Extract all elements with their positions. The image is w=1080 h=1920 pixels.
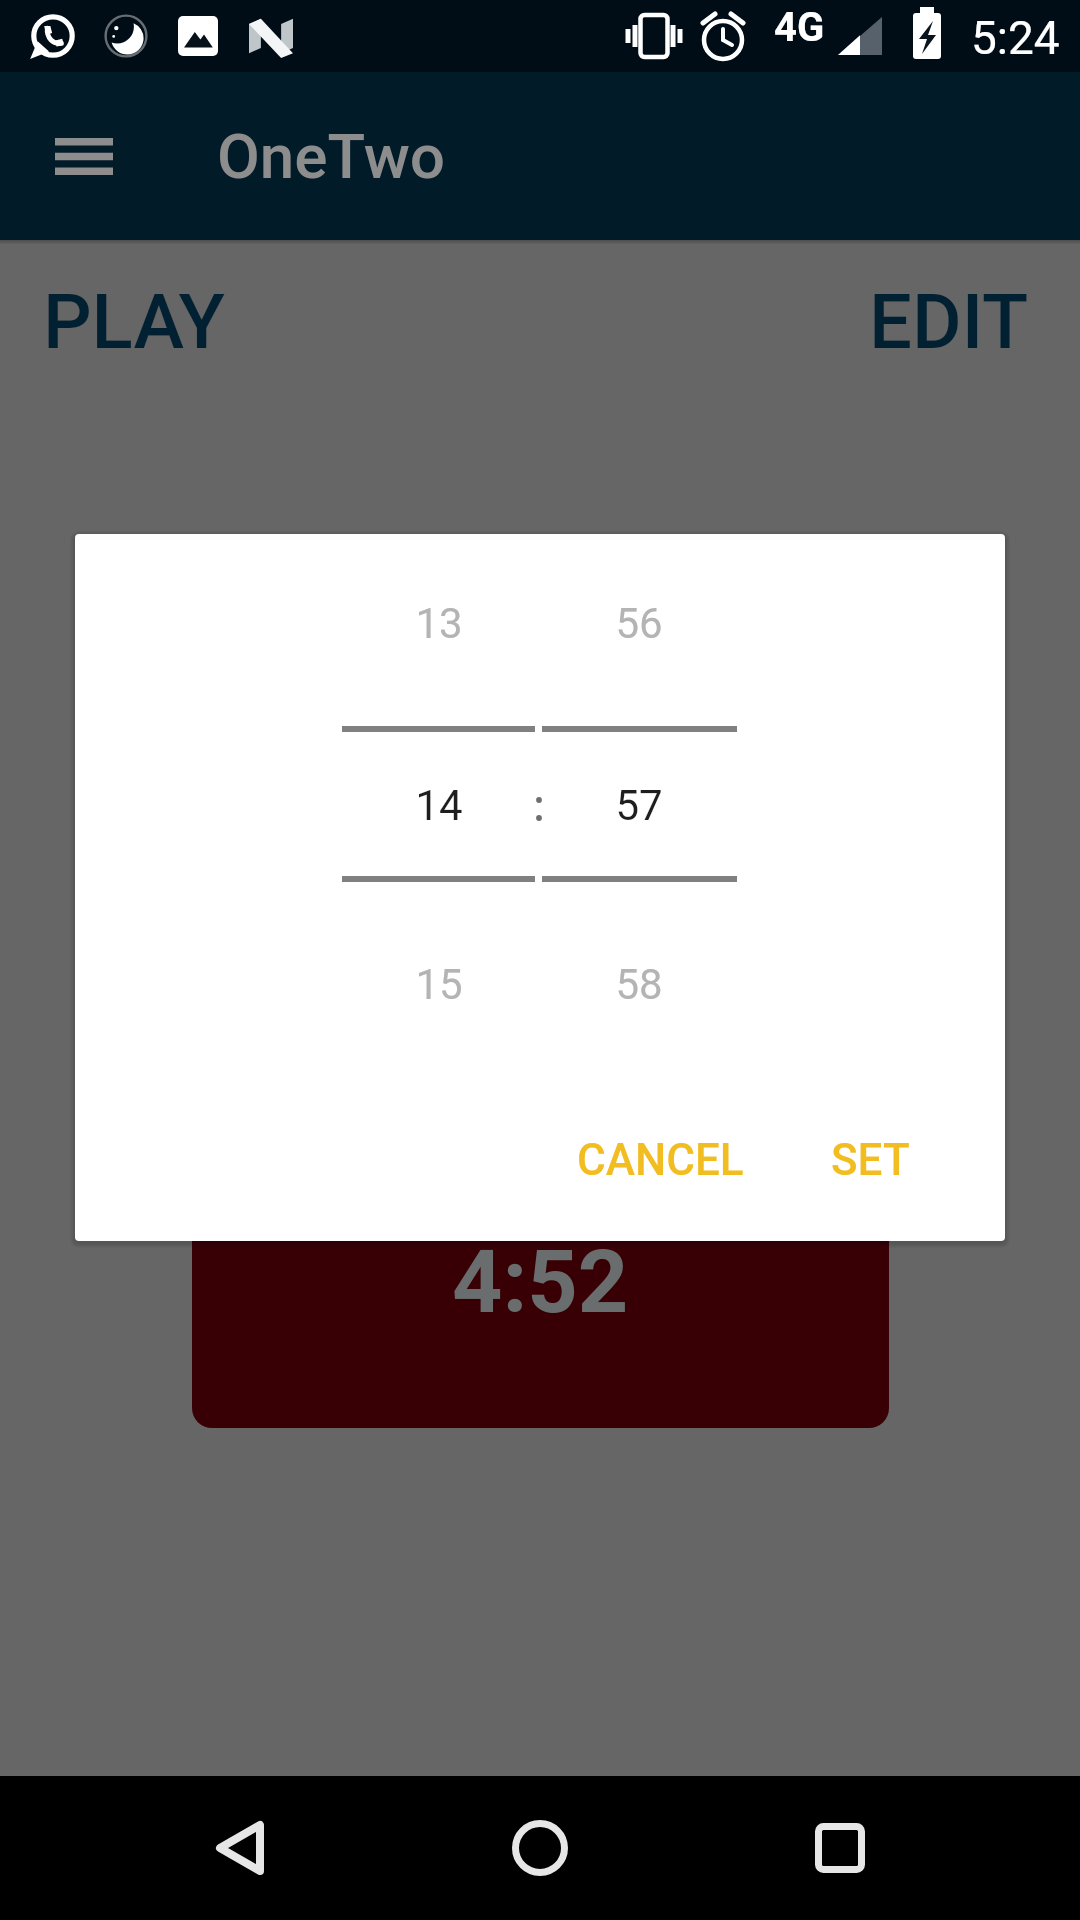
button[interactable]: Back [180,1800,300,1896]
staticText: SET [831,1134,910,1186]
button[interactable]: 13 [344,563,534,683]
button[interactable]: Recent apps [780,1800,900,1896]
staticText: 58 [615,960,663,1009]
button[interactable]: 15 [344,924,534,1044]
staticText: PLAY [43,277,225,366]
button[interactable]: PLAY [28,271,240,371]
button[interactable]: 4:52 [192,1216,889,1428]
staticText: 4G [774,4,825,51]
staticText: EDIT [869,277,1029,366]
staticText: CANCEL [577,1134,744,1186]
button[interactable]: Home [480,1800,600,1896]
button[interactable]: 58 [544,924,734,1044]
button[interactable]: SET [810,1112,930,1208]
staticText: 4:52 [452,1230,629,1333]
button[interactable]: EDIT [848,271,1050,371]
staticText: 14 [415,781,463,830]
button[interactable]: Open navigation menu [32,107,136,205]
staticText: 57 [615,781,663,830]
staticText: 13 [415,599,463,648]
staticText: OneTwo [217,120,446,193]
button[interactable]: CANCEL [561,1112,759,1208]
button[interactable]: 56 [544,563,734,683]
button[interactable]: 14 [344,745,534,865]
staticText: 15 [415,960,463,1009]
staticText: 5:24 [971,11,1060,65]
staticText: 56 [615,599,663,648]
button[interactable]: 57 [544,745,734,865]
